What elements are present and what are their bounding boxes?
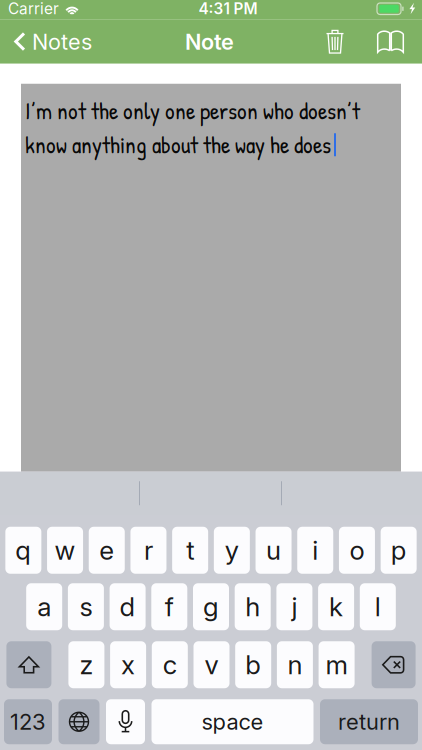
staticText: z	[79, 649, 93, 680]
button[interactable]: Notes	[0, 20, 100, 64]
staticText: r	[144, 534, 153, 566]
button[interactable]: q	[5, 527, 41, 574]
button[interactable]: k	[318, 583, 354, 630]
button[interactable]: v	[193, 641, 229, 688]
button[interactable]: l	[360, 583, 396, 630]
staticText: u	[266, 534, 281, 566]
button[interactable]: e	[89, 527, 125, 574]
button[interactable]: Delete note	[319, 20, 351, 64]
staticText: x	[121, 649, 135, 680]
button[interactable]: m	[319, 641, 355, 688]
button[interactable]: c	[152, 641, 188, 688]
button[interactable]: j	[276, 583, 312, 630]
button[interactable]: 123	[4, 699, 52, 744]
staticText: c	[163, 649, 177, 680]
staticText: o	[349, 534, 364, 566]
button[interactable]: w	[47, 527, 83, 574]
button[interactable]: Delete	[372, 641, 416, 688]
button[interactable]: x	[110, 641, 146, 688]
staticText: p	[391, 534, 407, 566]
staticText: Carrier	[8, 0, 59, 18]
staticText: g	[203, 591, 219, 622]
button[interactable]: s	[68, 583, 104, 630]
staticText: a	[37, 591, 51, 622]
staticText: return	[338, 708, 400, 735]
staticText: j	[291, 591, 297, 622]
staticText: 123	[10, 708, 46, 735]
button[interactable]: y	[214, 527, 250, 574]
button[interactable]: f	[151, 583, 187, 630]
staticText: m	[326, 649, 348, 680]
button[interactable]: d	[110, 583, 146, 630]
staticText: n	[287, 649, 302, 680]
staticText: b	[245, 649, 261, 680]
staticText: v	[204, 649, 218, 680]
staticText: s	[79, 591, 92, 622]
button[interactable]: h	[235, 583, 271, 630]
button[interactable]: Switch keyboard	[58, 699, 99, 744]
staticText: Note	[185, 29, 234, 55]
staticText: I’m not the only one person who doesn’t	[25, 95, 360, 127]
button[interactable]: r	[130, 527, 166, 574]
button[interactable]: u	[255, 527, 291, 574]
button[interactable]: Notes list	[367, 20, 414, 64]
staticText: w	[54, 534, 75, 566]
button[interactable]: i	[297, 527, 333, 574]
staticText: f	[165, 591, 174, 622]
button[interactable]: z	[68, 641, 104, 688]
button[interactable]: b	[235, 641, 271, 688]
staticText: l	[375, 591, 381, 622]
staticText: 4:31 PM	[198, 0, 257, 18]
staticText: q	[15, 534, 31, 566]
button[interactable]: g	[193, 583, 229, 630]
button[interactable]: p	[381, 527, 417, 574]
staticText: y	[225, 534, 239, 566]
staticText: h	[245, 591, 260, 622]
button[interactable]: Shift	[6, 641, 51, 688]
staticText: d	[120, 591, 136, 622]
staticText: k	[329, 591, 343, 622]
button[interactable]: return	[320, 699, 418, 744]
button[interactable]: space	[151, 699, 313, 744]
button[interactable]: t	[172, 527, 208, 574]
staticText: know anything about the way he does	[25, 129, 331, 161]
button[interactable]: a	[26, 583, 62, 630]
staticText: Notes	[32, 29, 92, 55]
button[interactable]: Dictate	[106, 699, 145, 744]
staticText: e	[99, 534, 114, 566]
button[interactable]: n	[277, 641, 313, 688]
staticText: i	[312, 534, 318, 566]
staticText: space	[201, 708, 263, 735]
button[interactable]: o	[339, 527, 375, 574]
staticText: t	[186, 534, 194, 566]
